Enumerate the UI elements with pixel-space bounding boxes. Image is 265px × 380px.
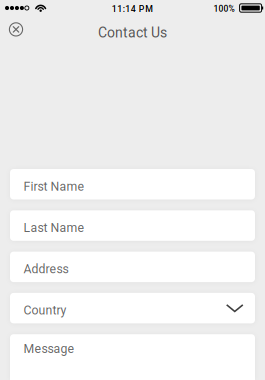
staticText: Contact Us: [98, 24, 167, 41]
staticText: Address: [23, 262, 68, 276]
staticText: Message: [23, 342, 74, 356]
button[interactable]: Close: [0, 23, 23, 36]
staticText: First Name: [23, 179, 84, 194]
staticText: Last Name: [23, 220, 84, 235]
button[interactable]: First Name: [10, 169, 255, 199]
button[interactable]: Message: [10, 334, 255, 380]
button[interactable]: Address: [10, 252, 255, 282]
button[interactable]: Country: [10, 293, 255, 323]
button[interactable]: Last Name: [10, 210, 255, 241]
staticText: 100%: [213, 4, 234, 14]
staticText: Country: [23, 303, 66, 317]
staticText: 11:14 PM: [112, 4, 153, 14]
